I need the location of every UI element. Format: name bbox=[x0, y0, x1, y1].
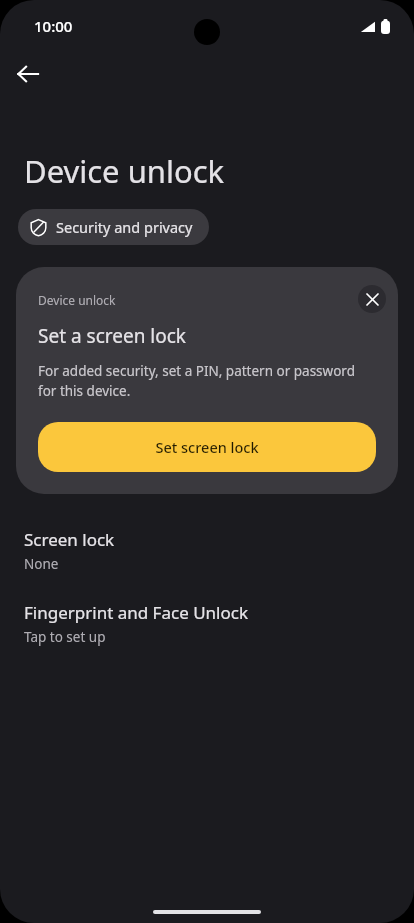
staticText: None bbox=[24, 555, 59, 573]
staticText: Screen lock bbox=[24, 528, 115, 551]
button[interactable]: Security and privacy bbox=[18, 209, 209, 245]
button[interactable]: Dismiss bbox=[358, 285, 386, 313]
staticText: Tap to set up bbox=[24, 628, 106, 646]
staticText: Set a screen lock bbox=[38, 323, 187, 349]
button[interactable]: Back bbox=[6, 52, 50, 96]
staticText: Fingerprint and Face Unlock bbox=[24, 601, 248, 624]
staticText: Security and privacy bbox=[56, 217, 193, 237]
staticText: Device unlock bbox=[38, 292, 116, 308]
button[interactable]: Set screen lock bbox=[38, 422, 376, 472]
button[interactable]: Screen lock bbox=[0, 524, 414, 579]
staticText: 10:00 bbox=[34, 16, 73, 36]
staticText: Set screen lock bbox=[155, 437, 259, 457]
button[interactable]: Fingerprint and Face Unlock bbox=[0, 597, 414, 652]
staticText: For added security, set a PIN, pattern o… bbox=[38, 362, 376, 400]
staticText: Device unlock bbox=[24, 150, 225, 192]
